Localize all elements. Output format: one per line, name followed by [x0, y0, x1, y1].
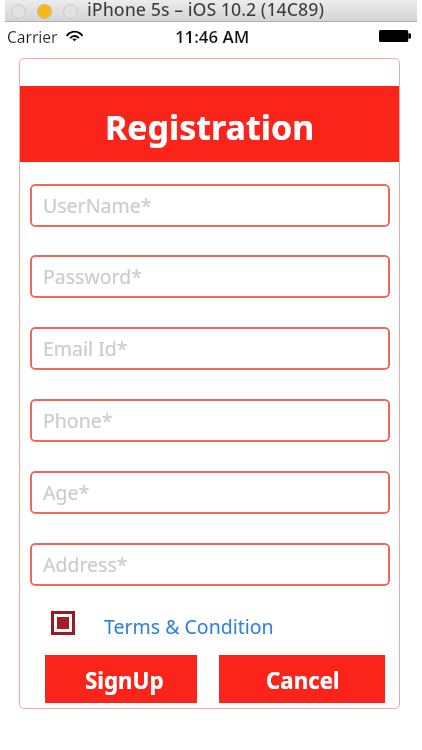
staticText: Terms & Condition: [104, 613, 274, 639]
staticText: Email Id*: [43, 335, 128, 362]
button[interactable]: Cancel: [219, 655, 385, 703]
staticText: iPhone 5s – iOS 10.2 (14C89): [87, 0, 324, 19]
button[interactable]: UserName*: [30, 184, 390, 227]
staticText: UserName*: [43, 192, 152, 219]
button[interactable]: Phone*: [30, 399, 390, 442]
button[interactable]: Password*: [30, 255, 390, 298]
staticText: Phone*: [43, 407, 113, 434]
staticText: Age*: [43, 479, 90, 506]
button[interactable]: Email Id*: [30, 327, 390, 370]
staticText: 11:46 AM: [175, 25, 250, 48]
button[interactable]: Address*: [30, 543, 390, 586]
button[interactable]: Terms & Condition: [104, 613, 274, 639]
staticText: Cancel: [266, 665, 340, 695]
staticText: Address*: [43, 551, 128, 578]
staticText: Password*: [43, 263, 142, 290]
button[interactable]: Age*: [30, 471, 390, 514]
staticText: Registration: [105, 104, 315, 150]
staticText: SignUp: [85, 665, 164, 695]
staticText: Carrier: [7, 26, 58, 47]
button[interactable]: SignUp: [45, 655, 197, 703]
